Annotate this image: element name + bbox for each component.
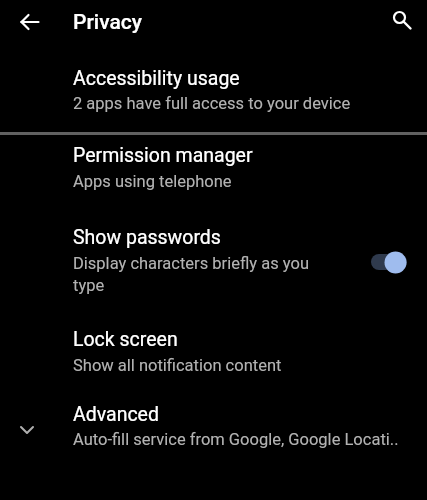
staticText: 2 apps have full access to your device xyxy=(73,94,351,113)
staticText: Apps using telephone xyxy=(73,172,232,191)
button[interactable]: Permission manager xyxy=(0,134,427,210)
staticText: Show all notification content xyxy=(73,356,282,375)
button[interactable]: Advanced xyxy=(0,388,427,468)
staticText: Lock screen xyxy=(73,328,178,351)
button[interactable]: Show passwords xyxy=(0,210,427,310)
button[interactable]: Lock screen xyxy=(0,310,427,388)
button[interactable] xyxy=(8,0,52,44)
staticText: Privacy xyxy=(73,10,143,35)
button[interactable] xyxy=(365,244,411,280)
staticText: Display characters briefly as you type xyxy=(73,254,331,295)
staticText: Permission manager xyxy=(73,144,253,167)
staticText: Advanced xyxy=(73,403,159,426)
button[interactable]: Accessibility usage xyxy=(0,44,427,132)
staticText: Accessibility usage xyxy=(73,67,240,90)
staticText: Auto-fill service from Google, Google Lo… xyxy=(73,430,399,449)
staticText: Show passwords xyxy=(73,226,221,249)
button[interactable] xyxy=(380,0,424,42)
